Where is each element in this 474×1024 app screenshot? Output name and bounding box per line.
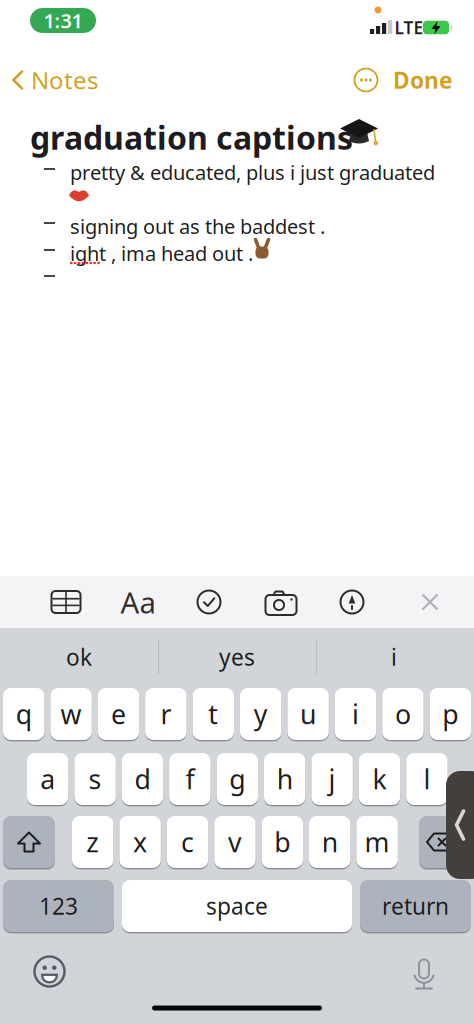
staticText: q: [16, 696, 32, 732]
staticText: a: [40, 761, 55, 797]
staticText: s: [89, 761, 102, 797]
button[interactable]: k: [359, 752, 400, 806]
button[interactable]: b: [262, 815, 303, 869]
button[interactable]: n: [309, 815, 350, 869]
staticText: space: [206, 891, 268, 921]
staticText: d: [134, 761, 150, 797]
staticText: e: [111, 696, 126, 732]
staticText: l: [423, 761, 430, 797]
staticText: f: [185, 761, 194, 797]
staticText: k: [372, 761, 386, 797]
staticText: LTE: [394, 16, 423, 39]
staticText: ight , ima head out .: [70, 240, 253, 267]
button[interactable]: u: [287, 687, 329, 741]
button[interactable]: r: [145, 687, 187, 741]
button[interactable]: j: [311, 752, 353, 806]
button[interactable]: m: [356, 815, 398, 869]
staticText: Aa: [120, 582, 155, 621]
staticText: Notes: [31, 64, 98, 96]
staticText: y: [254, 696, 268, 732]
button[interactable]: o: [382, 687, 424, 741]
button[interactable]: c: [167, 815, 208, 869]
staticText: t: [208, 696, 218, 732]
staticText: h: [277, 761, 293, 797]
button[interactable]: yes: [162, 634, 312, 680]
button[interactable]: [413, 959, 435, 990]
staticText: return: [382, 891, 449, 921]
staticText: u: [300, 696, 316, 732]
staticText: g: [229, 761, 245, 797]
button[interactable]: [32, 954, 66, 988]
button[interactable]: Done: [393, 65, 453, 95]
button[interactable]: x: [119, 815, 161, 869]
staticText: 123: [39, 891, 78, 921]
button[interactable]: w: [50, 687, 92, 741]
staticText: i: [391, 642, 397, 672]
staticText: 1:31: [43, 7, 82, 34]
button[interactable]: v: [214, 815, 256, 869]
button[interactable]: space: [122, 879, 352, 933]
staticText: graduation captions: [30, 116, 353, 158]
button[interactable]: [415, 587, 445, 617]
button[interactable]: y: [240, 687, 281, 741]
staticText: r: [160, 696, 171, 732]
staticText: n: [322, 824, 338, 860]
button[interactable]: g: [217, 752, 258, 806]
button[interactable]: return: [360, 879, 471, 933]
button[interactable]: [193, 587, 225, 617]
button[interactable]: [3, 816, 55, 868]
button[interactable]: [48, 587, 84, 617]
button[interactable]: f: [169, 752, 211, 806]
button[interactable]: z: [72, 815, 113, 869]
button[interactable]: 123: [3, 879, 114, 933]
button[interactable]: t: [193, 687, 234, 741]
button[interactable]: Notes: [12, 64, 98, 96]
button[interactable]: [263, 588, 299, 618]
staticText: m: [365, 824, 390, 860]
button[interactable]: a: [27, 752, 68, 806]
staticText: yes: [219, 642, 255, 672]
button[interactable]: e: [98, 687, 139, 741]
button[interactable]: h: [264, 752, 305, 806]
button[interactable]: i: [335, 687, 376, 741]
staticText: i: [352, 696, 359, 732]
staticText: ok: [66, 642, 92, 672]
staticText: x: [133, 824, 147, 860]
staticText: o: [395, 696, 411, 732]
button[interactable]: s: [74, 752, 116, 806]
staticText: w: [61, 696, 82, 732]
staticText: c: [181, 824, 194, 860]
button[interactable]: p: [430, 687, 471, 741]
button[interactable]: l: [406, 752, 448, 806]
button[interactable]: [446, 771, 474, 879]
staticText: pretty & educated, plus i just graduated: [70, 159, 435, 186]
button[interactable]: q: [3, 687, 44, 741]
button[interactable]: [354, 68, 377, 91]
staticText: signing out as the baddest .: [70, 213, 325, 240]
button[interactable]: ok: [4, 634, 154, 680]
staticText: p: [442, 696, 458, 732]
staticText: Done: [393, 65, 453, 95]
button[interactable]: Aa: [118, 587, 158, 617]
button[interactable]: i: [319, 634, 469, 680]
button[interactable]: [419, 816, 471, 868]
staticText: z: [86, 824, 99, 860]
staticText: v: [228, 824, 242, 860]
staticText: b: [274, 824, 290, 860]
staticText: j: [329, 761, 336, 797]
button[interactable]: d: [122, 752, 163, 806]
button[interactable]: [336, 587, 368, 617]
